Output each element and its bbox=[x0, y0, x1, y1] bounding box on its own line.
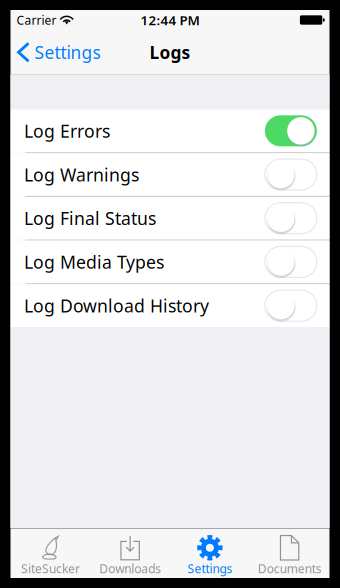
staticText: 12:44 PM bbox=[140, 11, 199, 29]
staticText: Settings bbox=[34, 41, 100, 64]
staticText: Log Final Status bbox=[24, 206, 156, 230]
button[interactable]: Documents bbox=[250, 529, 330, 578]
button[interactable]: SiteSucker bbox=[10, 529, 90, 578]
button[interactable]: Log Errors bbox=[10, 109, 329, 152]
button[interactable]: Settings bbox=[10, 30, 108, 74]
staticText: Log Download History bbox=[24, 294, 209, 318]
staticText: Log Warnings bbox=[24, 163, 139, 187]
staticText: Downloads bbox=[99, 561, 161, 576]
staticText: Log Media Types bbox=[24, 250, 164, 274]
staticText: Carrier bbox=[16, 12, 56, 28]
button[interactable]: Downloads bbox=[90, 529, 170, 578]
staticText: Logs bbox=[149, 41, 190, 64]
button[interactable]: Log Warnings bbox=[10, 153, 329, 196]
button[interactable]: Log Final Status bbox=[10, 197, 329, 240]
button[interactable]: Log Download History bbox=[10, 284, 329, 327]
staticText: Documents bbox=[258, 561, 322, 576]
staticText: Settings bbox=[187, 561, 232, 576]
staticText: Log Errors bbox=[24, 119, 110, 143]
button[interactable]: Settings bbox=[170, 529, 250, 578]
button[interactable]: Log Media Types bbox=[10, 241, 329, 283]
staticText: SiteSucker bbox=[21, 561, 80, 576]
